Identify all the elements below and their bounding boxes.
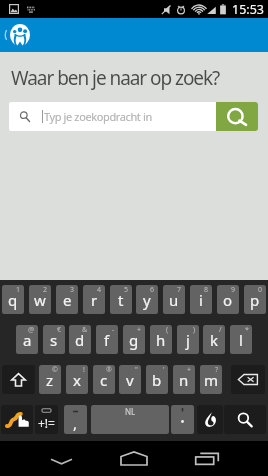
button[interactable]: j (177, 325, 199, 354)
staticText: @ (28, 325, 35, 335)
button[interactable]: n (173, 365, 195, 394)
button[interactable]: u (163, 285, 185, 314)
staticText: ' (163, 365, 165, 375)
button[interactable]: p (244, 285, 266, 314)
button[interactable]: e (56, 285, 78, 314)
staticText: + (187, 365, 192, 375)
button[interactable]: b (146, 365, 168, 394)
staticText: + (137, 325, 142, 335)
staticText: s (50, 330, 58, 350)
staticText: 3 (70, 285, 75, 295)
button[interactable]: w (29, 285, 51, 314)
staticText: 8 (204, 285, 209, 295)
staticText: ! (83, 365, 85, 375)
button[interactable]: m (200, 365, 222, 394)
button[interactable] (171, 405, 194, 434)
staticText: y (143, 290, 151, 310)
staticText: o (223, 290, 233, 310)
staticText: e (63, 290, 72, 310)
staticText: j (186, 330, 190, 350)
staticText: i (199, 290, 203, 310)
staticText: € (57, 325, 62, 335)
staticText: +!= (38, 415, 55, 431)
button[interactable]: s (43, 325, 65, 354)
button[interactable] (2, 365, 35, 394)
button[interactable]: x (66, 365, 88, 394)
button[interactable]: NL (91, 405, 169, 434)
staticText: f (104, 330, 110, 350)
button[interactable]: t (110, 285, 132, 314)
staticText: q (8, 290, 18, 310)
staticText: c (100, 370, 108, 390)
staticText: x (73, 370, 81, 390)
button[interactable]: g (123, 325, 145, 354)
staticText: ® (106, 365, 112, 375)
button[interactable]: o (217, 285, 239, 314)
staticText: w (34, 290, 46, 310)
staticText: ( (166, 325, 169, 335)
staticText: z (46, 370, 54, 390)
staticText: - (112, 325, 115, 335)
button[interactable]: Recent apps (183, 441, 231, 476)
staticText: * (245, 325, 249, 335)
button[interactable]: Search (216, 102, 258, 131)
staticText: 1 (16, 285, 21, 295)
staticText: 15:53 (232, 1, 264, 18)
button[interactable]: Home (110, 441, 158, 476)
button[interactable]: h (150, 325, 172, 354)
button[interactable]: l (230, 325, 252, 354)
staticText: a (23, 330, 32, 350)
staticText: & (82, 325, 88, 335)
staticText: © (52, 365, 58, 375)
button[interactable]: Back (0, 18, 10, 52)
staticText: r (91, 290, 98, 310)
staticText: h (156, 330, 166, 350)
staticText: l (239, 330, 243, 350)
staticText: u (169, 290, 179, 310)
button[interactable]: d (69, 325, 91, 354)
staticText: 6 (150, 285, 155, 295)
staticText: ) (193, 325, 196, 335)
button[interactable]: +!= (35, 405, 58, 434)
button[interactable]: v (119, 365, 141, 394)
staticText: NL (125, 406, 136, 417)
button[interactable] (1, 405, 33, 434)
staticText: 2 (43, 285, 48, 295)
button[interactable] (231, 365, 265, 394)
staticText: " (135, 365, 138, 375)
button[interactable]: c (93, 365, 115, 394)
staticText: / (219, 325, 222, 335)
staticText: 4 (97, 285, 102, 295)
staticText: k (210, 330, 219, 350)
staticText: ? (215, 365, 219, 375)
button[interactable]: Back (37, 441, 85, 476)
button[interactable]: Typ je zoekopdracht in (9, 102, 216, 131)
staticText: 9 (231, 285, 236, 295)
staticText: n (179, 370, 189, 390)
button[interactable]: y (136, 285, 158, 314)
staticText: v (126, 370, 134, 390)
staticText: b (152, 370, 162, 390)
staticText: , (73, 413, 78, 433)
button[interactable] (197, 405, 223, 434)
button[interactable]: , (64, 405, 87, 434)
button[interactable]: k (203, 325, 225, 354)
staticText: 7 (177, 285, 182, 295)
staticText: 0 (258, 285, 263, 295)
button[interactable] (224, 405, 266, 434)
button[interactable]: q (2, 285, 24, 314)
staticText: p (250, 290, 260, 310)
button[interactable]: a (16, 325, 38, 354)
button[interactable]: z (39, 365, 61, 394)
staticText: d (75, 330, 85, 350)
staticText: 5 (124, 285, 129, 295)
button[interactable]: i (190, 285, 212, 314)
staticText: Typ je zoekopdracht in (44, 109, 152, 124)
staticText: t (118, 290, 124, 310)
staticText: Waar ben je naar op zoek? (11, 65, 220, 91)
button[interactable]: f (96, 325, 118, 354)
staticText: m (204, 370, 219, 390)
staticText: g (129, 330, 139, 350)
button[interactable]: Home (10, 18, 30, 52)
button[interactable]: r (83, 285, 105, 314)
